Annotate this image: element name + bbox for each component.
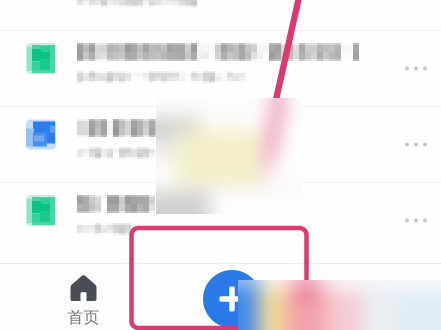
button[interactable]: More actions: [393, 114, 439, 174]
button[interactable]: [0, 31, 441, 106]
button[interactable]: Create new: [203, 270, 261, 328]
button[interactable]: [0, 183, 441, 258]
button[interactable]: 首页: [0, 264, 167, 330]
button[interactable]: More actions: [393, 190, 439, 250]
button[interactable]: [0, 107, 441, 182]
button[interactable]: More actions: [393, 38, 439, 98]
staticText: 首页: [67, 308, 99, 327]
button[interactable]: [0, 0, 441, 30]
